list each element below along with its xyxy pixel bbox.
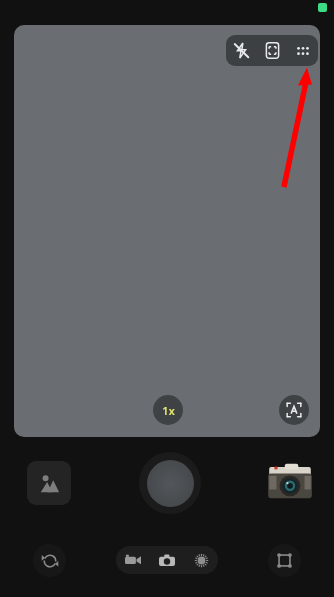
button[interactable]: Switch camera [33, 544, 66, 577]
button[interactable]: Shutter [139, 452, 201, 514]
staticText: 1x [162, 403, 175, 418]
button[interactable]: AI scan [279, 395, 309, 425]
button[interactable]: More options [288, 35, 318, 66]
button[interactable]: Aperture mode [184, 546, 218, 574]
button[interactable]: Flash off [226, 35, 257, 66]
button[interactable]: Aspect ratio [268, 544, 301, 577]
button[interactable]: Document scan [257, 35, 288, 66]
button[interactable]: Recent photo [264, 461, 316, 505]
button[interactable]: 1x [153, 395, 183, 425]
button[interactable]: Video mode [116, 546, 150, 574]
button[interactable]: Gallery [27, 461, 71, 505]
button[interactable]: Photo mode [150, 546, 184, 574]
